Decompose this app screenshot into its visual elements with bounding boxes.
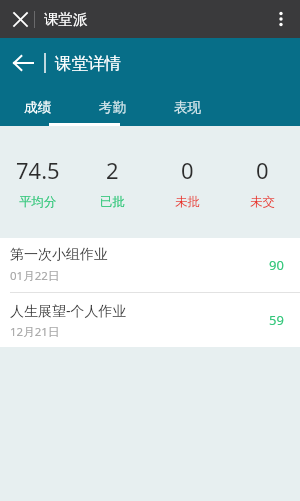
staticText: 12月21日 <box>10 324 60 340</box>
button[interactable]: More options <box>264 2 298 36</box>
staticText: 考勤 <box>99 99 126 116</box>
staticText: 第一次小组作业 <box>10 246 108 264</box>
button[interactable]: 第一次小组作业 <box>0 238 300 292</box>
staticText: 人生展望-个人作业 <box>10 301 127 320</box>
staticText: 未批 <box>175 194 200 210</box>
button[interactable]: 考勤 <box>75 88 150 126</box>
staticText: 0 <box>181 155 194 185</box>
staticText: 课堂派 <box>44 10 88 28</box>
staticText: 74.5 <box>16 155 60 185</box>
staticText: 2 <box>106 155 119 185</box>
staticText: 课堂详情 <box>55 53 121 74</box>
button[interactable]: Back <box>2 42 44 84</box>
staticText: 已批 <box>100 194 125 210</box>
button[interactable]: 0 <box>225 155 300 210</box>
button[interactable]: 0 <box>150 155 225 210</box>
staticText: 90 <box>269 256 284 274</box>
button[interactable]: 人生展望-个人作业 <box>0 293 300 347</box>
button[interactable]: Close <box>4 3 36 35</box>
button[interactable]: 成绩 <box>0 88 75 126</box>
button[interactable]: 2 <box>75 155 150 210</box>
button[interactable]: 表现 <box>150 88 225 126</box>
staticText: 表现 <box>174 99 201 116</box>
staticText: 59 <box>269 311 284 329</box>
button[interactable]: 74.5 <box>0 155 75 210</box>
staticText: 平均分 <box>19 194 57 210</box>
staticText: 0 <box>256 155 269 185</box>
staticText: 未交 <box>250 194 275 210</box>
staticText: 01月22日 <box>10 268 60 284</box>
staticText: 成绩 <box>24 99 51 116</box>
